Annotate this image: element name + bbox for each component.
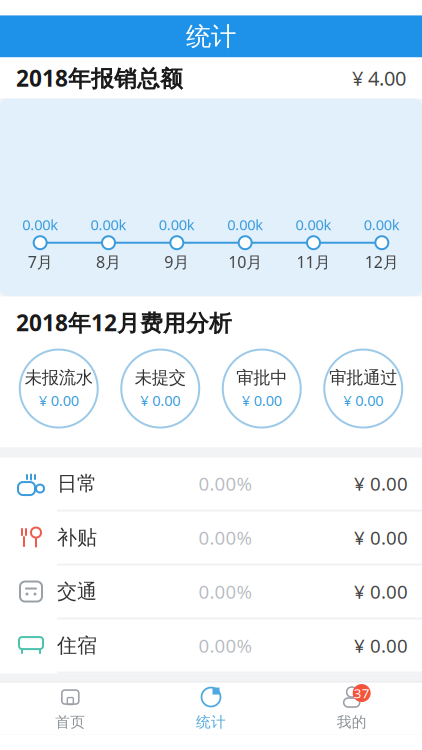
staticText: 11月 bbox=[296, 251, 330, 272]
staticText: 0.00k bbox=[364, 215, 400, 234]
staticText: 审批通过 bbox=[329, 367, 397, 388]
button[interactable]: 未报流水 bbox=[8, 348, 109, 430]
staticText: ¥ 0.00 bbox=[343, 390, 383, 410]
staticText: 住宿 bbox=[57, 633, 97, 658]
staticText: 未提交 bbox=[135, 367, 186, 388]
staticText: 7月 bbox=[28, 251, 53, 272]
staticText: 首页 bbox=[55, 713, 85, 731]
button[interactable]: 统计 bbox=[141, 683, 281, 735]
staticText: 0.00k bbox=[90, 215, 126, 234]
button[interactable]: 补贴 bbox=[0, 512, 422, 566]
staticText: 12月 bbox=[365, 251, 399, 272]
staticText: 0.00k bbox=[227, 215, 263, 234]
staticText: 交通 bbox=[57, 579, 97, 604]
staticText: ¥ 0.00 bbox=[354, 633, 408, 658]
staticText: 37 bbox=[354, 684, 370, 702]
button[interactable]: 未提交 bbox=[109, 348, 211, 430]
staticText: 0.00% bbox=[198, 633, 252, 658]
staticText: ¥ 0.00 bbox=[39, 390, 79, 410]
staticText: 0.00% bbox=[198, 525, 252, 550]
staticText: ¥ 4.00 bbox=[352, 65, 406, 91]
staticText: 10月 bbox=[228, 251, 262, 272]
staticText: ¥ 0.00 bbox=[242, 390, 282, 410]
button[interactable]: 交通 bbox=[0, 566, 422, 620]
staticText: 日常 bbox=[57, 471, 97, 496]
staticText: 0.00k bbox=[159, 215, 195, 234]
button[interactable]: 住宿 bbox=[0, 620, 422, 674]
staticText: ¥ 0.00 bbox=[354, 525, 408, 550]
staticText: ¥ 0.00 bbox=[140, 390, 180, 410]
staticText: 我的 bbox=[337, 713, 367, 731]
staticText: 0.00k bbox=[22, 215, 58, 234]
staticText: 未报流水 bbox=[25, 367, 93, 388]
staticText: 2018年12月费用分析 bbox=[16, 307, 232, 337]
button[interactable]: 首页 bbox=[0, 683, 141, 735]
button[interactable]: 日常 bbox=[0, 458, 422, 512]
staticText: 0.00% bbox=[198, 579, 252, 604]
staticText: 8月 bbox=[96, 251, 121, 272]
staticText: ¥ 0.00 bbox=[354, 579, 408, 604]
button[interactable]: 37 bbox=[281, 683, 422, 735]
staticText: 统计 bbox=[196, 713, 226, 731]
staticText: 2018年报销总额 bbox=[16, 63, 183, 93]
button[interactable]: 审批通过 bbox=[312, 348, 414, 430]
button[interactable]: 审批中 bbox=[211, 348, 312, 430]
staticText: 统计 bbox=[186, 21, 236, 52]
staticText: 审批中 bbox=[236, 367, 287, 388]
staticText: ¥ 0.00 bbox=[354, 471, 408, 496]
staticText: 0.00k bbox=[295, 215, 331, 234]
staticText: 补贴 bbox=[57, 525, 97, 550]
staticText: 9月 bbox=[164, 251, 189, 272]
staticText: 0.00% bbox=[198, 471, 252, 496]
